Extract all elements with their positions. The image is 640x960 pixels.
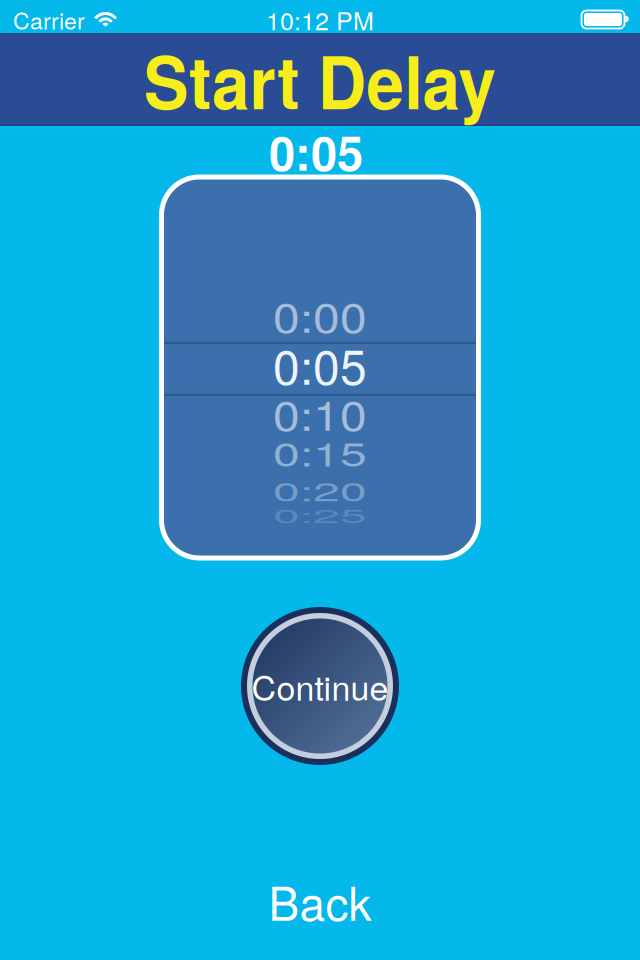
staticText: Carrier: [13, 3, 85, 36]
staticText: 0:15: [273, 418, 367, 486]
staticText: 10:12 PM: [266, 2, 374, 37]
staticText: 0:05: [273, 330, 367, 398]
button[interactable]: Start delay time picker: [161, 177, 478, 558]
button[interactable]: Back: [268, 868, 371, 934]
staticText: Continue: [251, 662, 388, 710]
staticText: 0:25: [273, 481, 367, 549]
staticText: Start Delay: [128, 27, 511, 132]
staticText: 0:10: [273, 379, 367, 447]
staticText: 0:05: [269, 118, 363, 185]
staticText: 0:20: [273, 456, 367, 524]
staticText: Back: [268, 868, 371, 934]
staticText: 0:00: [273, 281, 367, 349]
button[interactable]: Continue: [241, 607, 399, 765]
